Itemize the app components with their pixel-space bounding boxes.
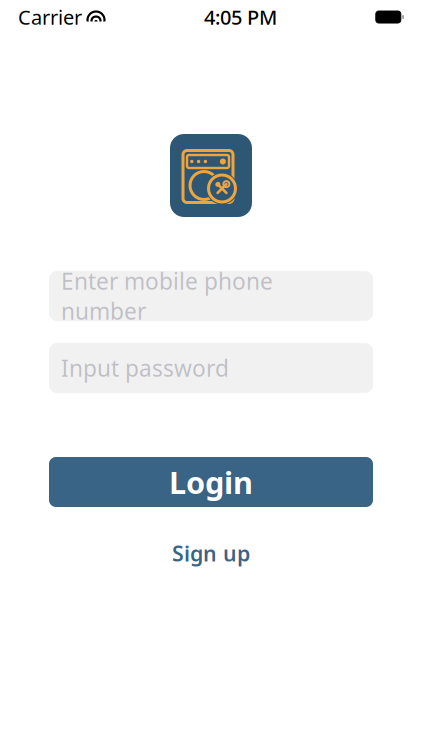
button[interactable]: Enter mobile phone number	[49, 271, 373, 321]
button[interactable]: Input password	[49, 343, 373, 393]
staticText: Login	[169, 462, 253, 502]
staticText: Input password	[61, 353, 229, 383]
staticText: Carrier	[18, 4, 82, 30]
staticText: 4:05 PM	[204, 4, 277, 30]
staticText: Sign up	[172, 539, 250, 567]
button[interactable]: Sign up	[154, 533, 268, 573]
staticText: Enter mobile phone number	[61, 266, 273, 326]
button[interactable]: Login	[49, 457, 373, 507]
